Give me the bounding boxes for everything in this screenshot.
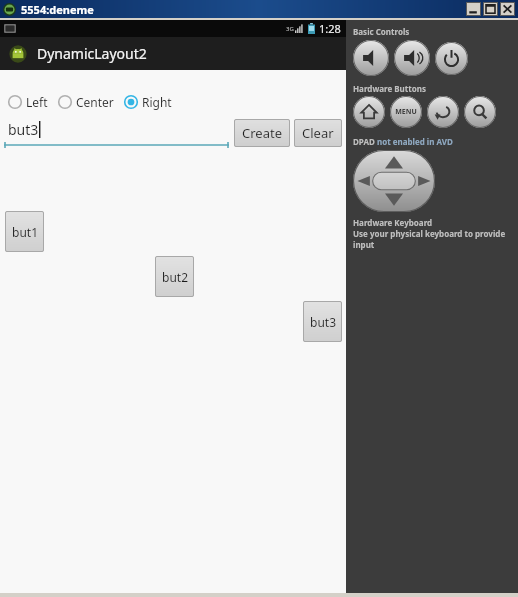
button[interactable]: Left xyxy=(6,92,50,112)
button[interactable]: Create xyxy=(234,119,290,147)
staticText: but3 xyxy=(310,314,336,330)
button[interactable]: Clear xyxy=(294,119,342,147)
button[interactable]: Search xyxy=(464,96,496,128)
staticText: Right xyxy=(142,94,172,110)
button[interactable]: Volume up xyxy=(394,40,430,76)
button[interactable]: Maximize xyxy=(483,2,498,16)
button[interactable]: but3 xyxy=(303,301,342,342)
staticText: not enabled in AVD xyxy=(377,136,453,147)
staticText: but2 xyxy=(162,269,188,285)
button[interactable]: Center xyxy=(56,92,116,112)
staticText: DPAD xyxy=(353,136,377,147)
staticText: 1:28 xyxy=(319,21,341,36)
button[interactable]: Right xyxy=(122,92,174,112)
button[interactable]: Power xyxy=(435,42,468,75)
staticText: but3 xyxy=(8,120,39,139)
button[interactable]: D-pad xyxy=(353,150,435,212)
staticText: DynamicLayout2 xyxy=(37,44,147,63)
button[interactable]: Minimize xyxy=(466,2,481,16)
button[interactable]: but1 xyxy=(5,211,44,252)
button[interactable]: Close xyxy=(500,2,515,16)
staticText: Basic Controls xyxy=(353,26,410,37)
staticText: Left xyxy=(26,94,48,110)
staticText: Center xyxy=(76,94,114,110)
staticText: but1 xyxy=(12,224,38,240)
staticText: Hardware Keyboard xyxy=(353,217,433,228)
button[interactable]: Volume down xyxy=(353,40,389,76)
button[interactable]: Menu xyxy=(390,96,422,128)
button[interactable]: but2 xyxy=(155,256,194,297)
staticText: Use your physical keyboard to provide in… xyxy=(353,228,518,250)
button[interactable]: Back xyxy=(427,96,459,128)
staticText: MENU xyxy=(395,107,417,117)
staticText: Hardware Buttons xyxy=(353,83,426,94)
staticText: Create xyxy=(242,124,282,142)
staticText: 5554:deneme xyxy=(21,2,94,17)
staticText: 3G xyxy=(286,25,294,33)
staticText: Clear xyxy=(302,124,334,142)
button[interactable]: Home xyxy=(353,96,385,128)
